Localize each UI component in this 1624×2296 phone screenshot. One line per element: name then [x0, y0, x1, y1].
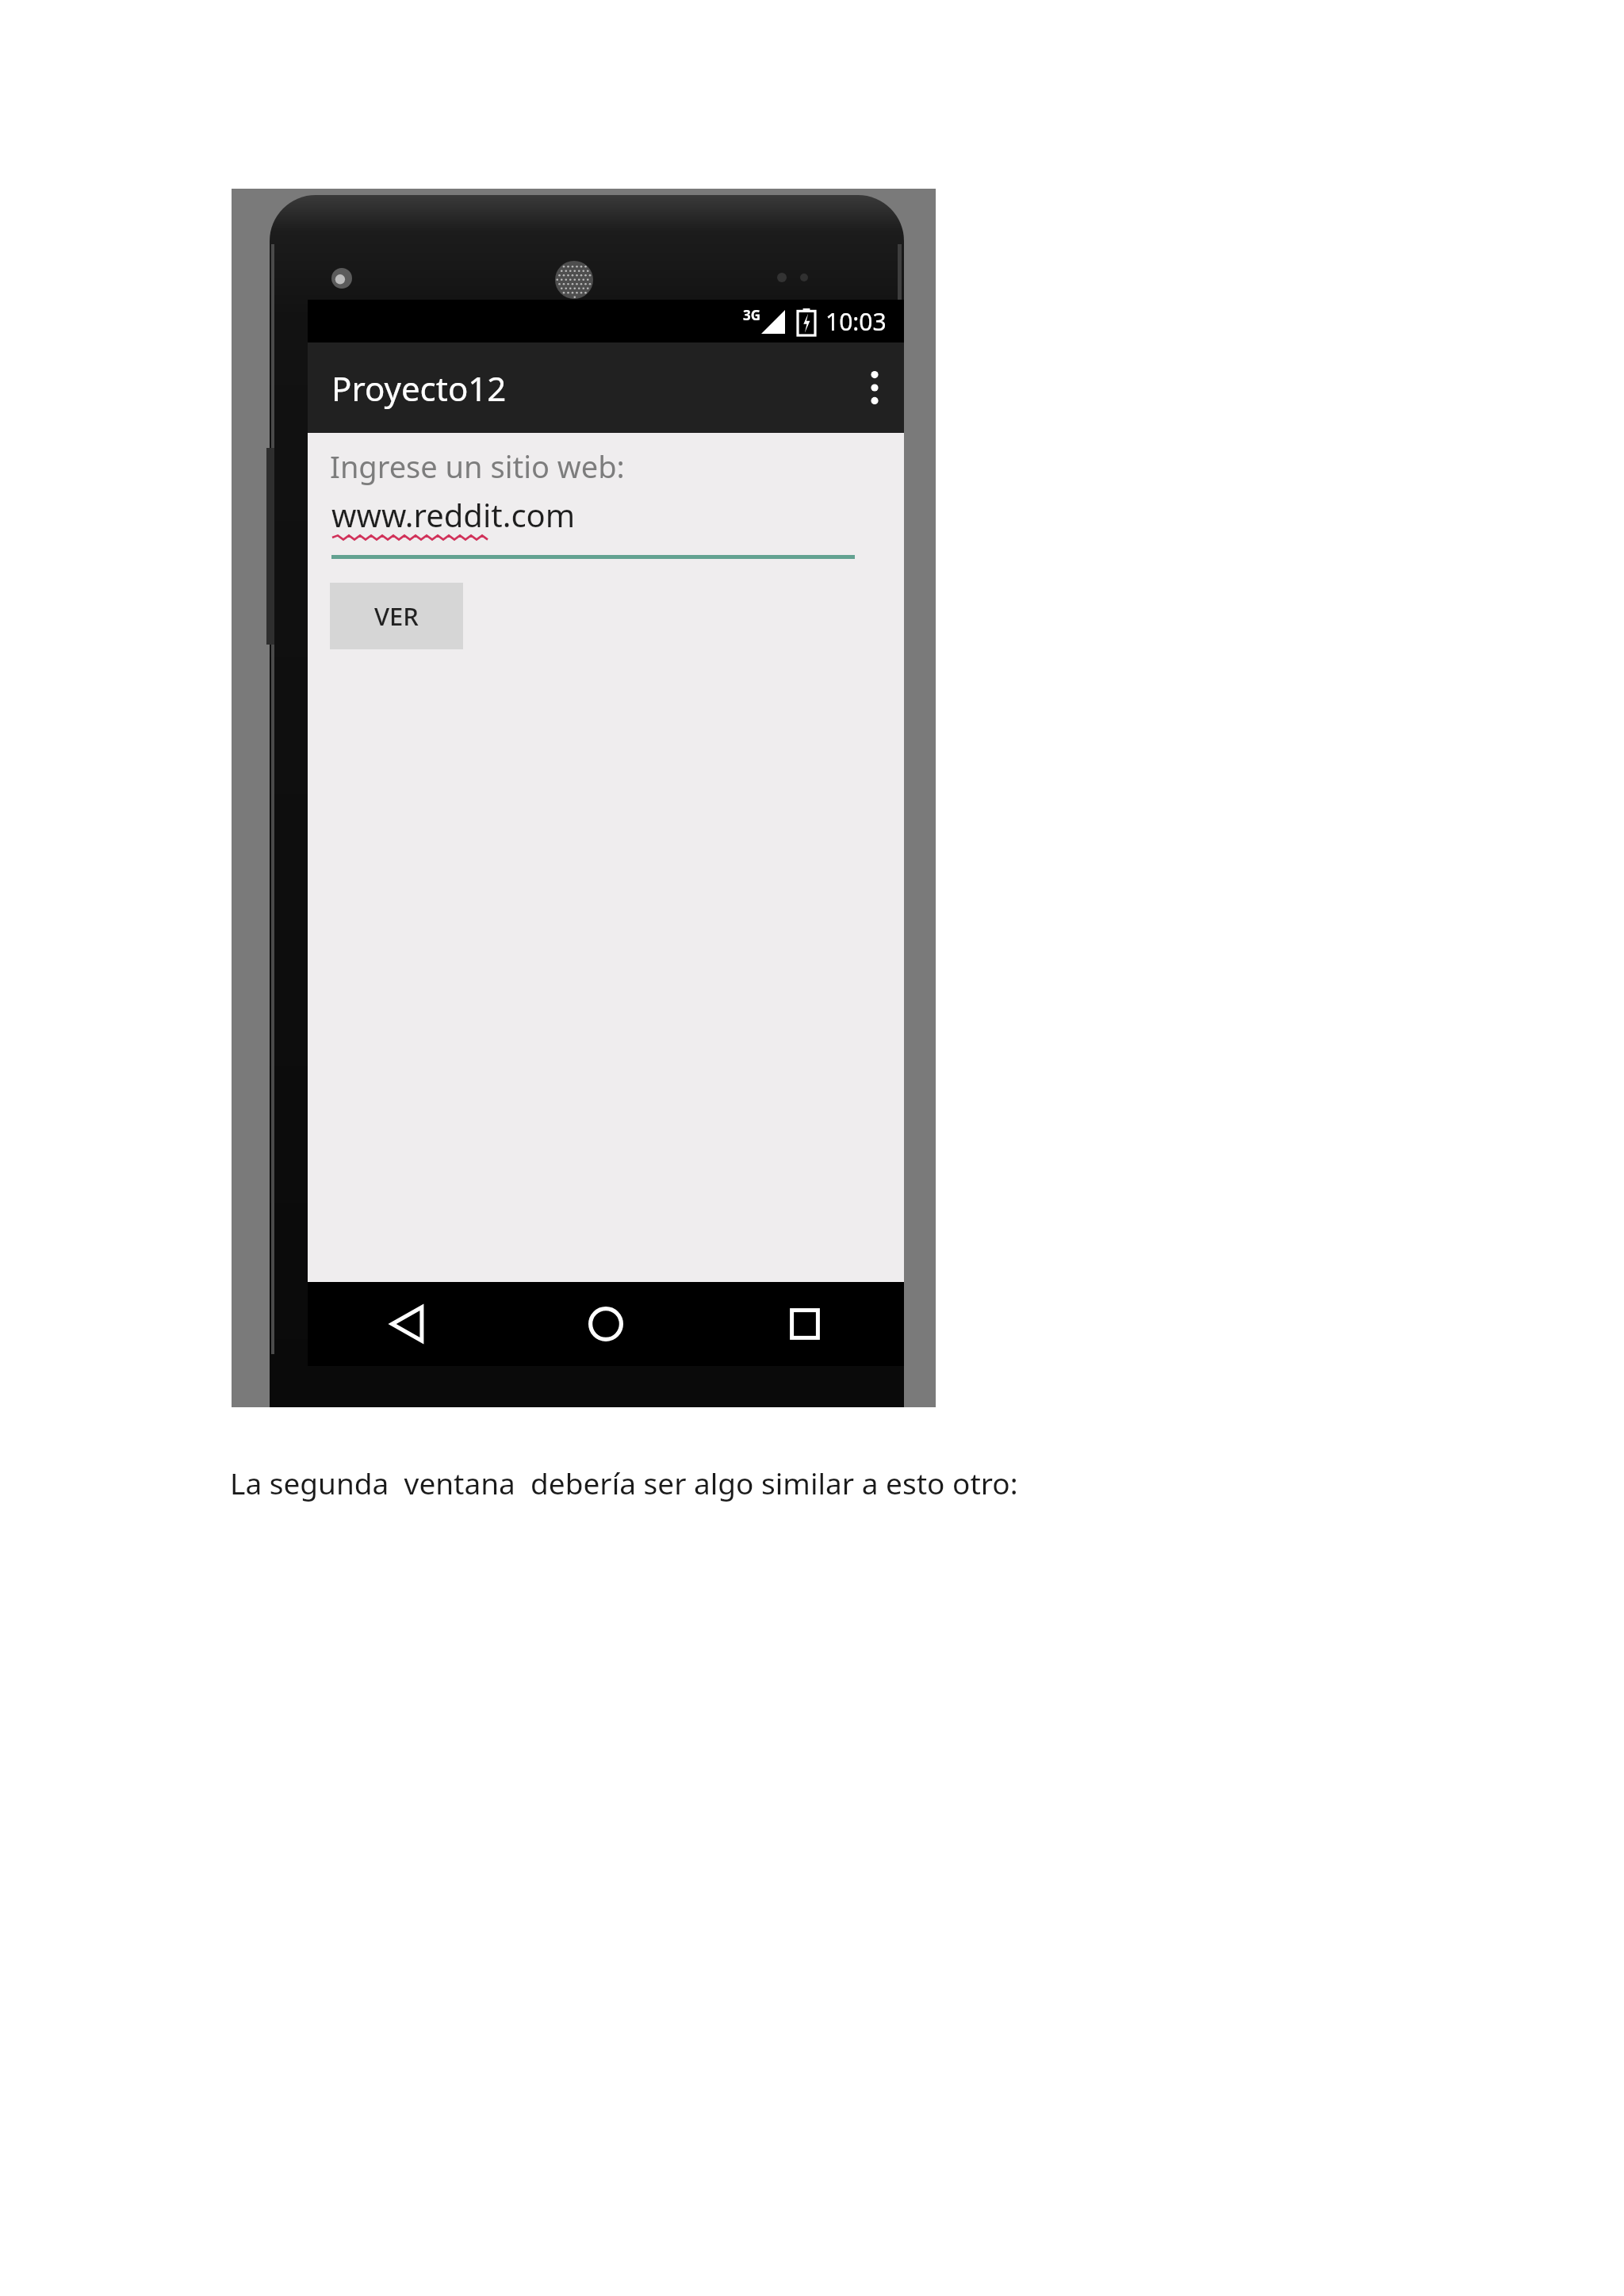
- button[interactable]: Home: [506, 1282, 705, 1366]
- staticText: 10:03: [825, 305, 887, 338]
- staticText: Proyecto12: [331, 365, 507, 411]
- button[interactable]: VER: [330, 583, 463, 649]
- staticText: 3G: [743, 306, 761, 324]
- button[interactable]: Back: [308, 1282, 506, 1366]
- staticText: Ingrese un sitio web:: [330, 446, 625, 487]
- staticText: www.reddit.com: [331, 493, 576, 536]
- button[interactable]: Recent apps: [705, 1282, 904, 1366]
- button[interactable]: More options: [845, 342, 904, 433]
- staticText: La segunda ventana debería ser algo simi…: [230, 1463, 1018, 1502]
- staticText: VER: [374, 599, 419, 633]
